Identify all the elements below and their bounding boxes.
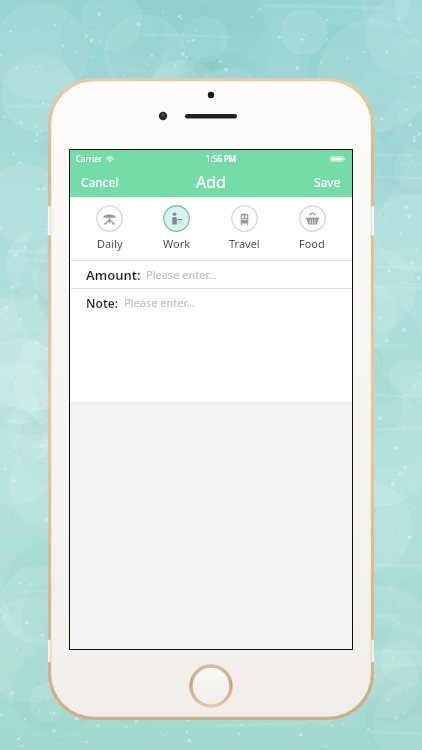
staticText: Travel	[229, 236, 260, 251]
staticText: Work	[163, 236, 191, 251]
button[interactable]: Work	[143, 205, 210, 251]
button[interactable]: Food	[278, 205, 346, 251]
staticText: Add	[196, 171, 226, 193]
staticText: Save	[314, 174, 341, 190]
staticText: 1:56 PM	[206, 153, 237, 164]
button[interactable]: Cancel	[70, 167, 130, 197]
button[interactable]: Save	[303, 167, 352, 197]
staticText: Please enter...	[124, 295, 196, 310]
staticText: Note:	[86, 295, 119, 311]
staticText: Daily	[97, 236, 123, 251]
staticText: Carrier	[76, 153, 103, 164]
button[interactable]: Daily	[76, 205, 143, 251]
button[interactable]: Note:	[70, 289, 352, 316]
button[interactable]: Travel	[210, 205, 278, 251]
staticText: Amount:	[86, 266, 141, 284]
staticText: Please enter...	[146, 267, 218, 282]
staticText: Food	[299, 236, 325, 251]
staticText: Cancel	[81, 174, 119, 190]
button[interactable]: Amount:	[70, 261, 352, 288]
